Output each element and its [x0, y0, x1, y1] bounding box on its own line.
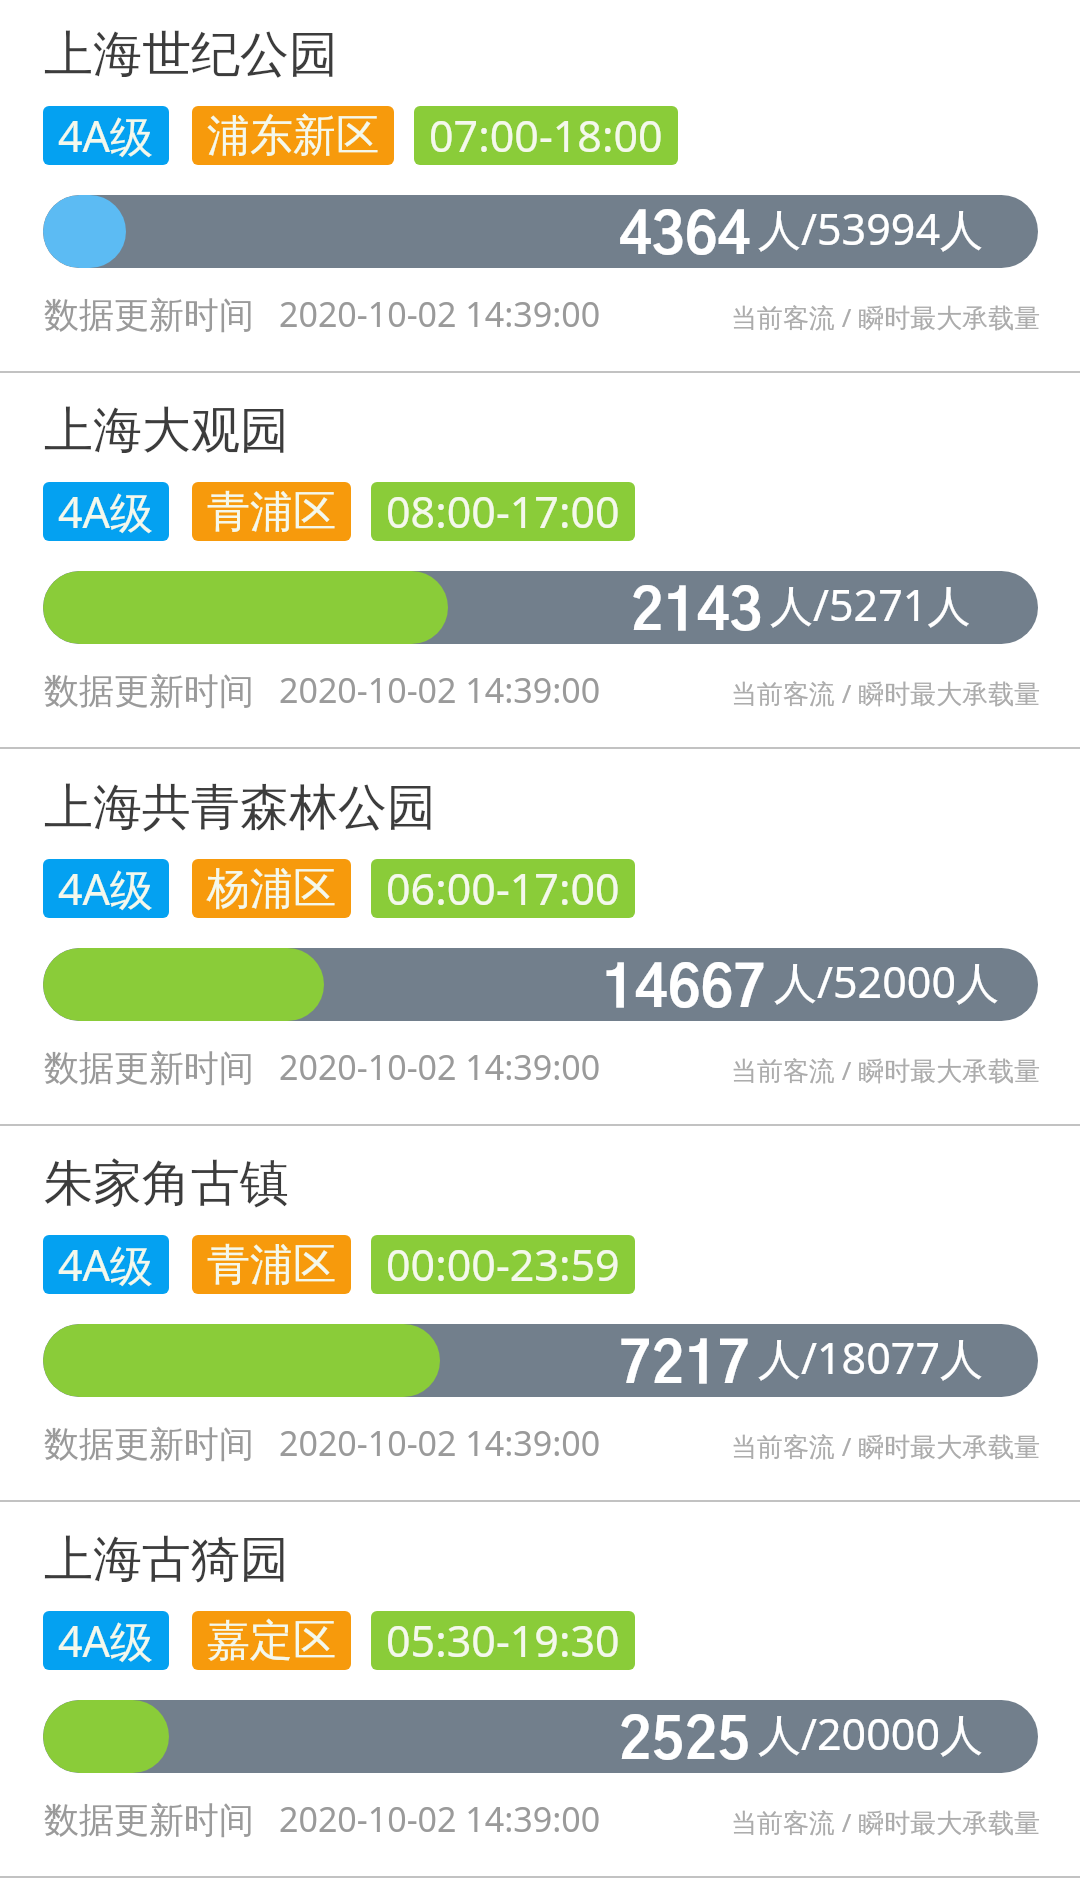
staticText: 14667 — [602, 962, 767, 1018]
staticText: 当前客流 / 瞬时最大承载量 — [731, 1052, 1041, 1088]
button[interactable]: 上海大观园 — [0, 370, 1080, 746]
staticText: 4A级 — [58, 482, 154, 541]
staticText: 朱家角古镇 — [44, 1153, 289, 1215]
staticText: 数据更新时间 — [44, 669, 254, 713]
button[interactable]: 4A级 — [43, 859, 169, 918]
staticText: 数据更新时间 — [44, 1798, 254, 1842]
staticText: 上海大观园 — [44, 400, 289, 462]
button[interactable]: 浦东新区 — [192, 106, 394, 165]
button[interactable]: 00:00-23:59 — [371, 1235, 635, 1294]
button[interactable]: 06:00-17:00 — [371, 859, 635, 918]
button[interactable]: 杨浦区 — [192, 859, 351, 918]
button[interactable]: 上海共青森林公园 — [0, 747, 1080, 1123]
staticText: 嘉定区 — [207, 1614, 336, 1668]
button[interactable]: 青浦区 — [192, 1235, 351, 1294]
staticText: 数据更新时间 — [44, 1422, 254, 1466]
staticText: 青浦区 — [207, 1238, 336, 1292]
staticText: 人/20000人 — [758, 1704, 983, 1763]
staticText: 4A级 — [58, 859, 154, 918]
button[interactable]: 朱家角古镇 — [0, 1123, 1080, 1499]
button[interactable]: 08:00-17:00 — [371, 482, 635, 541]
button[interactable]: 05:30-19:30 — [371, 1611, 635, 1670]
staticText: 2020-10-02 14:39:00 — [279, 1420, 601, 1466]
staticText: 07:00-18:00 — [429, 106, 663, 165]
staticText: 当前客流 / 瞬时最大承载量 — [731, 299, 1041, 335]
button[interactable]: 4A级 — [43, 482, 169, 541]
staticText: 08:00-17:00 — [386, 482, 620, 541]
staticText: 4A级 — [58, 1611, 154, 1670]
button[interactable]: 上海世纪公园 — [0, 0, 1080, 370]
staticText: 上海世纪公园 — [44, 24, 338, 86]
staticText: 2143 — [631, 585, 763, 641]
staticText: 当前客流 / 瞬时最大承载量 — [731, 1804, 1041, 1840]
button[interactable]: 07:00-18:00 — [414, 106, 678, 165]
staticText: 4A级 — [58, 1235, 154, 1294]
staticText: 2525 — [619, 1714, 751, 1770]
staticText: 当前客流 / 瞬时最大承载量 — [731, 675, 1041, 711]
button[interactable]: 青浦区 — [192, 482, 351, 541]
staticText: 上海古猗园 — [44, 1529, 289, 1591]
staticText: 杨浦区 — [207, 862, 336, 916]
button[interactable]: 4A级 — [43, 1235, 169, 1294]
button[interactable]: 4A级 — [43, 106, 169, 165]
staticText: 2020-10-02 14:39:00 — [279, 1796, 601, 1842]
staticText: 05:30-19:30 — [386, 1611, 620, 1670]
staticText: 上海共青森林公园 — [44, 777, 436, 839]
staticText: 4364 — [619, 209, 751, 265]
staticText: 7217 — [619, 1338, 751, 1394]
staticText: 人/52000人 — [774, 952, 999, 1011]
button[interactable]: 嘉定区 — [192, 1611, 351, 1670]
staticText: 浦东新区 — [207, 109, 379, 163]
staticText: 4A级 — [58, 106, 154, 165]
button[interactable]: 4A级 — [43, 1611, 169, 1670]
staticText: 当前客流 / 瞬时最大承载量 — [731, 1428, 1041, 1464]
staticText: 2020-10-02 14:39:00 — [279, 1044, 601, 1090]
staticText: 2020-10-02 14:39:00 — [279, 291, 601, 337]
staticText: 00:00-23:59 — [386, 1235, 620, 1294]
staticText: 数据更新时间 — [44, 1046, 254, 1090]
staticText: 人/18077人 — [758, 1328, 983, 1387]
staticText: 人/53994人 — [758, 199, 983, 258]
staticText: 人/5271人 — [770, 575, 971, 634]
staticText: 青浦区 — [207, 485, 336, 539]
staticText: 06:00-17:00 — [386, 859, 620, 918]
staticText: 数据更新时间 — [44, 293, 254, 337]
button[interactable]: 上海古猗园 — [0, 1499, 1080, 1875]
staticText: 2020-10-02 14:39:00 — [279, 667, 601, 713]
